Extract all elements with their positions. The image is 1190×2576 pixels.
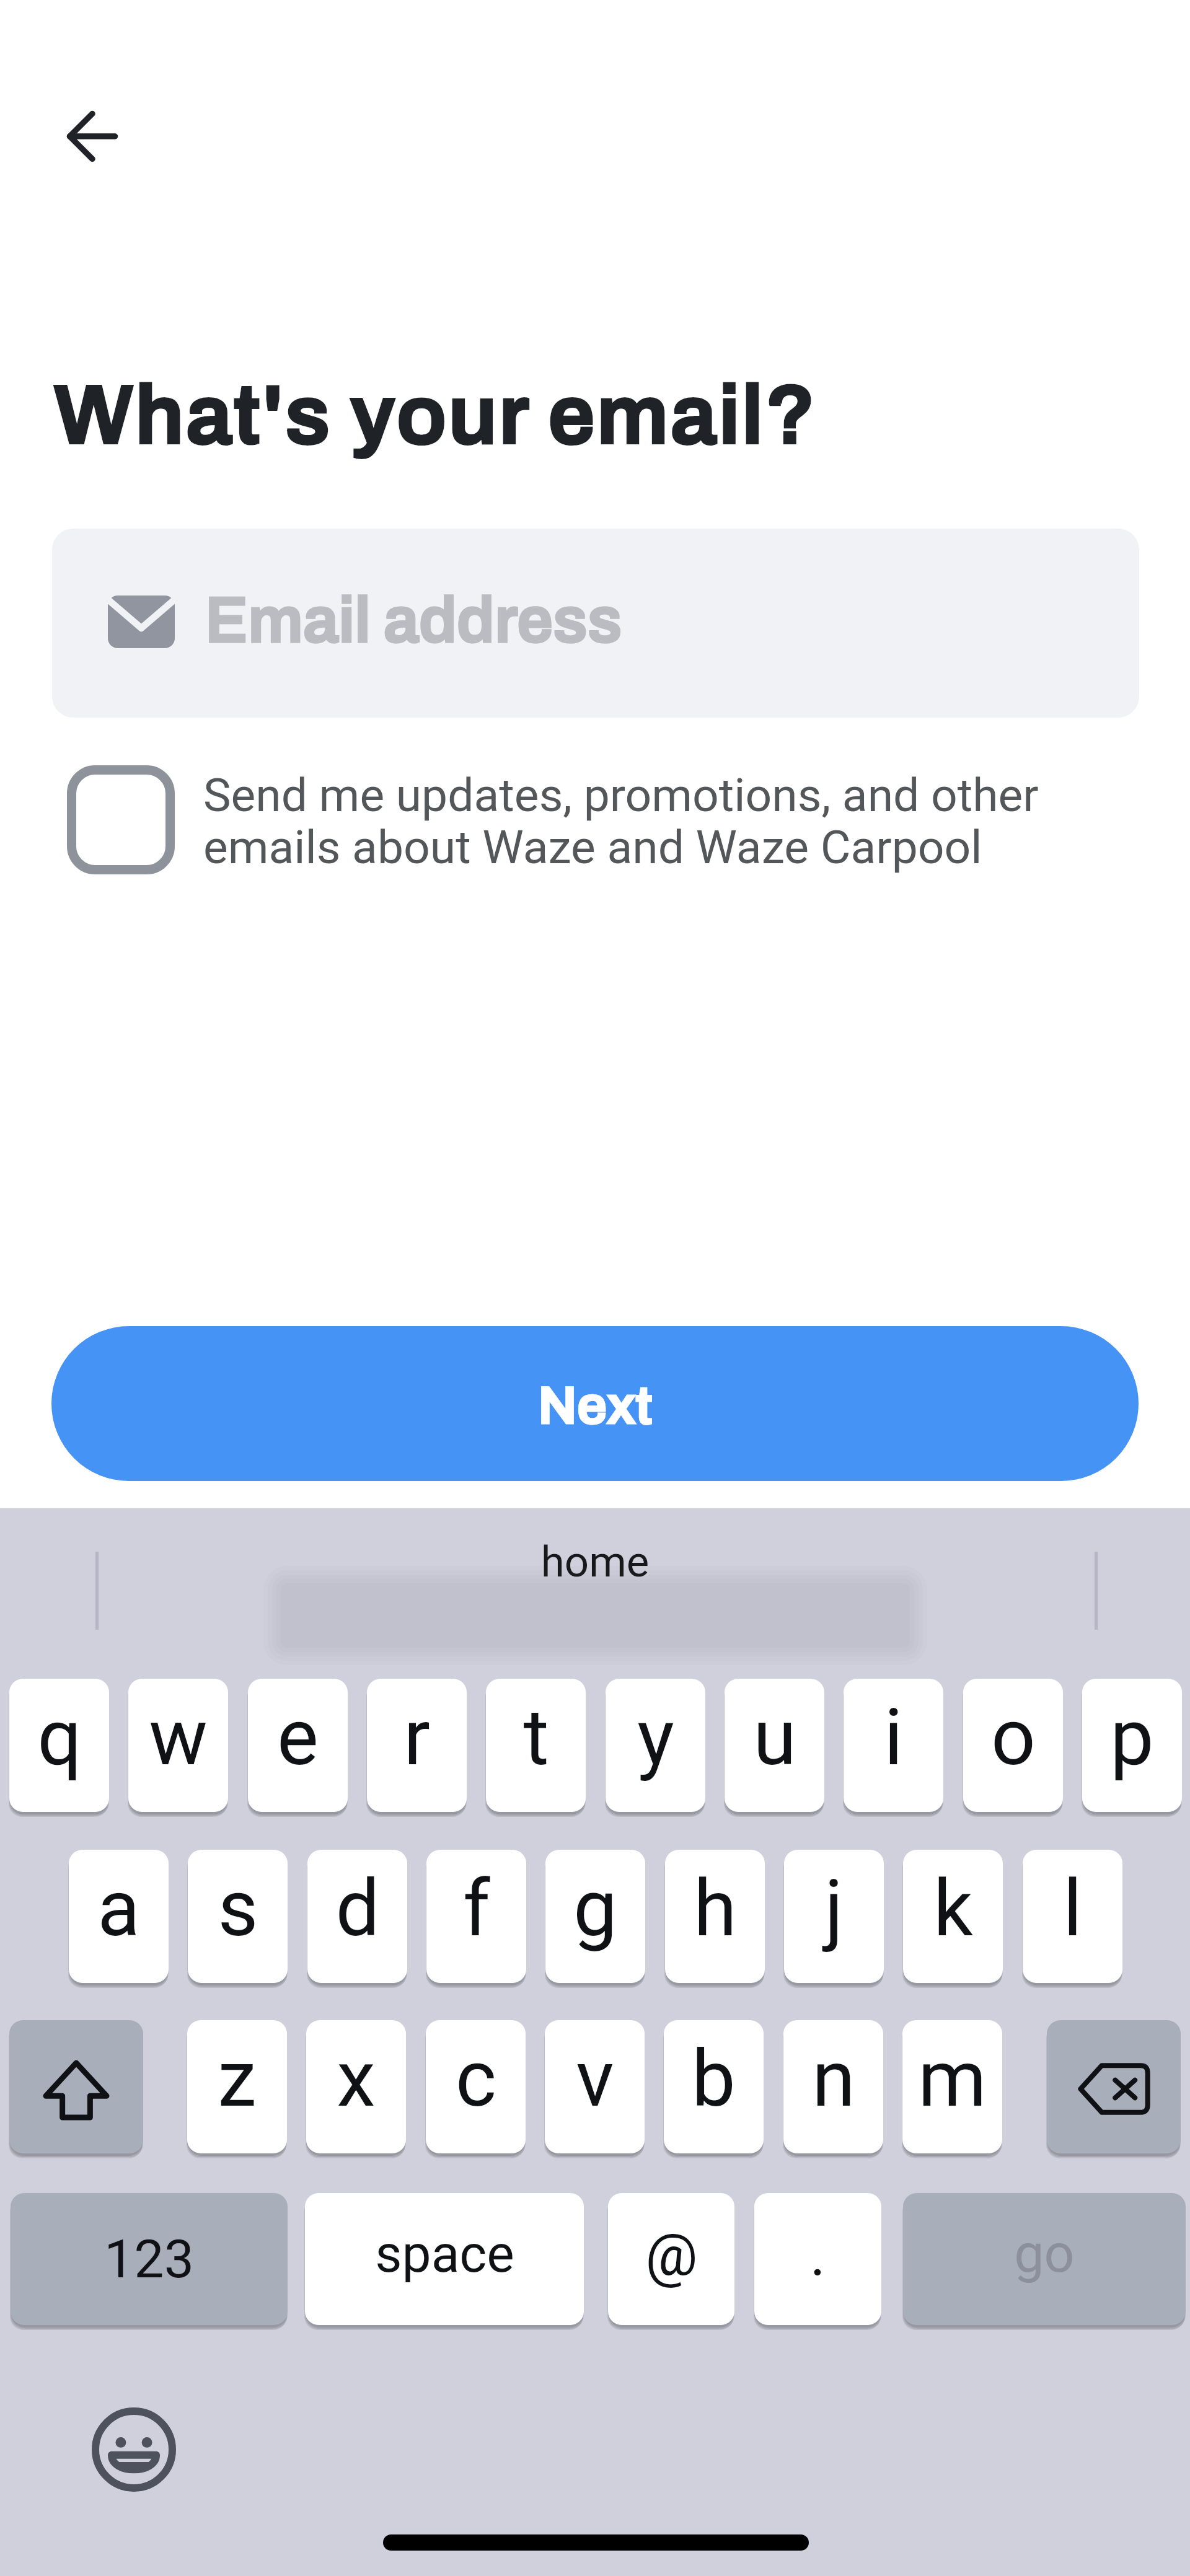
button[interactable]: 123 xyxy=(11,2193,288,2325)
staticText: m xyxy=(918,2033,987,2125)
button[interactable]: h xyxy=(665,1850,765,1983)
staticText: go xyxy=(1014,2222,1075,2285)
button[interactable]: space xyxy=(305,2193,584,2325)
button[interactable]: z xyxy=(187,2020,287,2153)
staticText: j xyxy=(824,1863,844,1954)
button[interactable]: f xyxy=(426,1850,526,1983)
button[interactable]: g xyxy=(545,1850,645,1983)
button[interactable]: n xyxy=(783,2020,883,2153)
staticText: r xyxy=(403,1692,430,1783)
button[interactable]: q xyxy=(9,1679,109,1812)
button[interactable]: Next xyxy=(51,1326,1139,1481)
button[interactable]: k xyxy=(903,1850,1003,1983)
button[interactable]: b xyxy=(664,2020,764,2153)
staticText: w xyxy=(149,1692,208,1783)
button[interactable]: o xyxy=(963,1679,1063,1812)
staticText: d xyxy=(335,1863,380,1954)
staticText: e xyxy=(277,1692,319,1783)
button[interactable]: y xyxy=(606,1679,705,1812)
button[interactable]: p xyxy=(1082,1679,1182,1812)
button[interactable]: u xyxy=(725,1679,824,1812)
staticText: v xyxy=(576,2033,614,2125)
staticText: . xyxy=(810,2221,826,2289)
button[interactable]: w xyxy=(128,1679,228,1812)
staticText: @ xyxy=(645,2221,698,2289)
staticText: home xyxy=(0,1537,1190,1587)
button[interactable]: r xyxy=(367,1679,467,1812)
staticText: z xyxy=(218,2033,257,2125)
staticText: space xyxy=(375,2223,514,2284)
staticText: f xyxy=(463,1863,490,1954)
button[interactable]: Backspace xyxy=(1047,2020,1181,2153)
staticText: u xyxy=(753,1692,796,1783)
button[interactable]: Shift xyxy=(9,2020,143,2153)
button[interactable]: l xyxy=(1023,1850,1122,1983)
button[interactable]: v xyxy=(545,2020,645,2153)
button[interactable]: Emoji xyxy=(92,2407,176,2492)
staticText: n xyxy=(812,2033,855,2125)
staticText: x xyxy=(337,2033,376,2125)
staticText: Send me updates, promotions, and other e… xyxy=(203,768,1116,875)
staticText: y xyxy=(637,1692,674,1783)
staticText: b xyxy=(692,2033,736,2125)
staticText: k xyxy=(933,1863,973,1954)
staticText: g xyxy=(573,1863,617,1954)
button[interactable]: c xyxy=(426,2020,526,2153)
staticText: s xyxy=(218,1863,258,1954)
staticText: i xyxy=(884,1692,903,1783)
staticText: Next xyxy=(538,1376,653,1435)
button[interactable]: t xyxy=(486,1679,586,1812)
staticText: c xyxy=(456,2033,496,2125)
staticText: p xyxy=(1110,1692,1154,1783)
staticText: t xyxy=(523,1692,549,1783)
staticText: What's your email? xyxy=(54,370,818,460)
button[interactable]: a xyxy=(69,1850,169,1983)
button[interactable]: x xyxy=(306,2020,406,2153)
button[interactable]: go xyxy=(903,2193,1186,2325)
button[interactable]: i xyxy=(844,1679,943,1812)
staticText: q xyxy=(37,1692,82,1783)
button[interactable]: e xyxy=(248,1679,348,1812)
staticText: h xyxy=(694,1863,737,1954)
staticText: Email address xyxy=(205,586,622,656)
button[interactable]: . xyxy=(754,2193,881,2325)
button[interactable]: j xyxy=(784,1850,884,1983)
staticText: o xyxy=(991,1692,1036,1783)
staticText: l xyxy=(1063,1863,1082,1954)
button[interactable]: Back xyxy=(49,93,136,180)
button[interactable]: Email address xyxy=(52,529,1139,718)
button[interactable]: Send me updates, promotions, and other e… xyxy=(62,761,1116,870)
staticText: a xyxy=(97,1863,140,1954)
button[interactable]: d xyxy=(307,1850,407,1983)
staticText: 123 xyxy=(104,2228,194,2290)
button[interactable]: s xyxy=(188,1850,288,1983)
button[interactable]: @ xyxy=(608,2193,734,2325)
button[interactable]: m xyxy=(902,2020,1002,2153)
